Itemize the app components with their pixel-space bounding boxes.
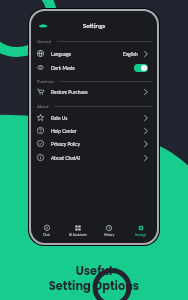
button[interactable]: Rate Us — [31, 112, 157, 123]
staticText: Chat — [43, 233, 50, 237]
button[interactable]: AI Assistants — [62, 219, 93, 243]
staticText: Purchase — [37, 79, 54, 84]
button[interactable]: Language — [31, 48, 157, 59]
staticText: About ChatAI — [51, 155, 80, 161]
button[interactable]: Help Center — [31, 125, 157, 136]
staticText: History — [104, 233, 115, 237]
button[interactable]: About ChatAI — [31, 152, 157, 163]
staticText: General — [37, 39, 52, 44]
button[interactable]: ChatAI logo — [38, 23, 48, 29]
staticText: Restore Purchase — [51, 89, 88, 95]
staticText: Dark Mode — [51, 65, 75, 71]
staticText: AI Assistants — [69, 233, 87, 237]
staticText: Privacy Policy — [51, 141, 80, 147]
button[interactable]: Privacy Policy — [31, 138, 157, 149]
staticText: Useful Setting Options — [0, 263, 188, 294]
staticText: Language — [51, 51, 72, 57]
staticText: Rate Us — [51, 115, 68, 121]
button[interactable]: Settings — [125, 219, 157, 243]
staticText: Settings — [31, 22, 157, 30]
staticText: English — [123, 51, 138, 57]
button[interactable]: Dark Mode — [31, 62, 157, 73]
staticText: About — [37, 104, 49, 109]
button[interactable]: Restore Purchase — [31, 86, 157, 97]
button[interactable]: Chat — [31, 219, 62, 243]
staticText: Help Center — [51, 128, 77, 134]
button[interactable]: History — [93, 219, 125, 243]
staticText: Settings — [135, 233, 147, 237]
